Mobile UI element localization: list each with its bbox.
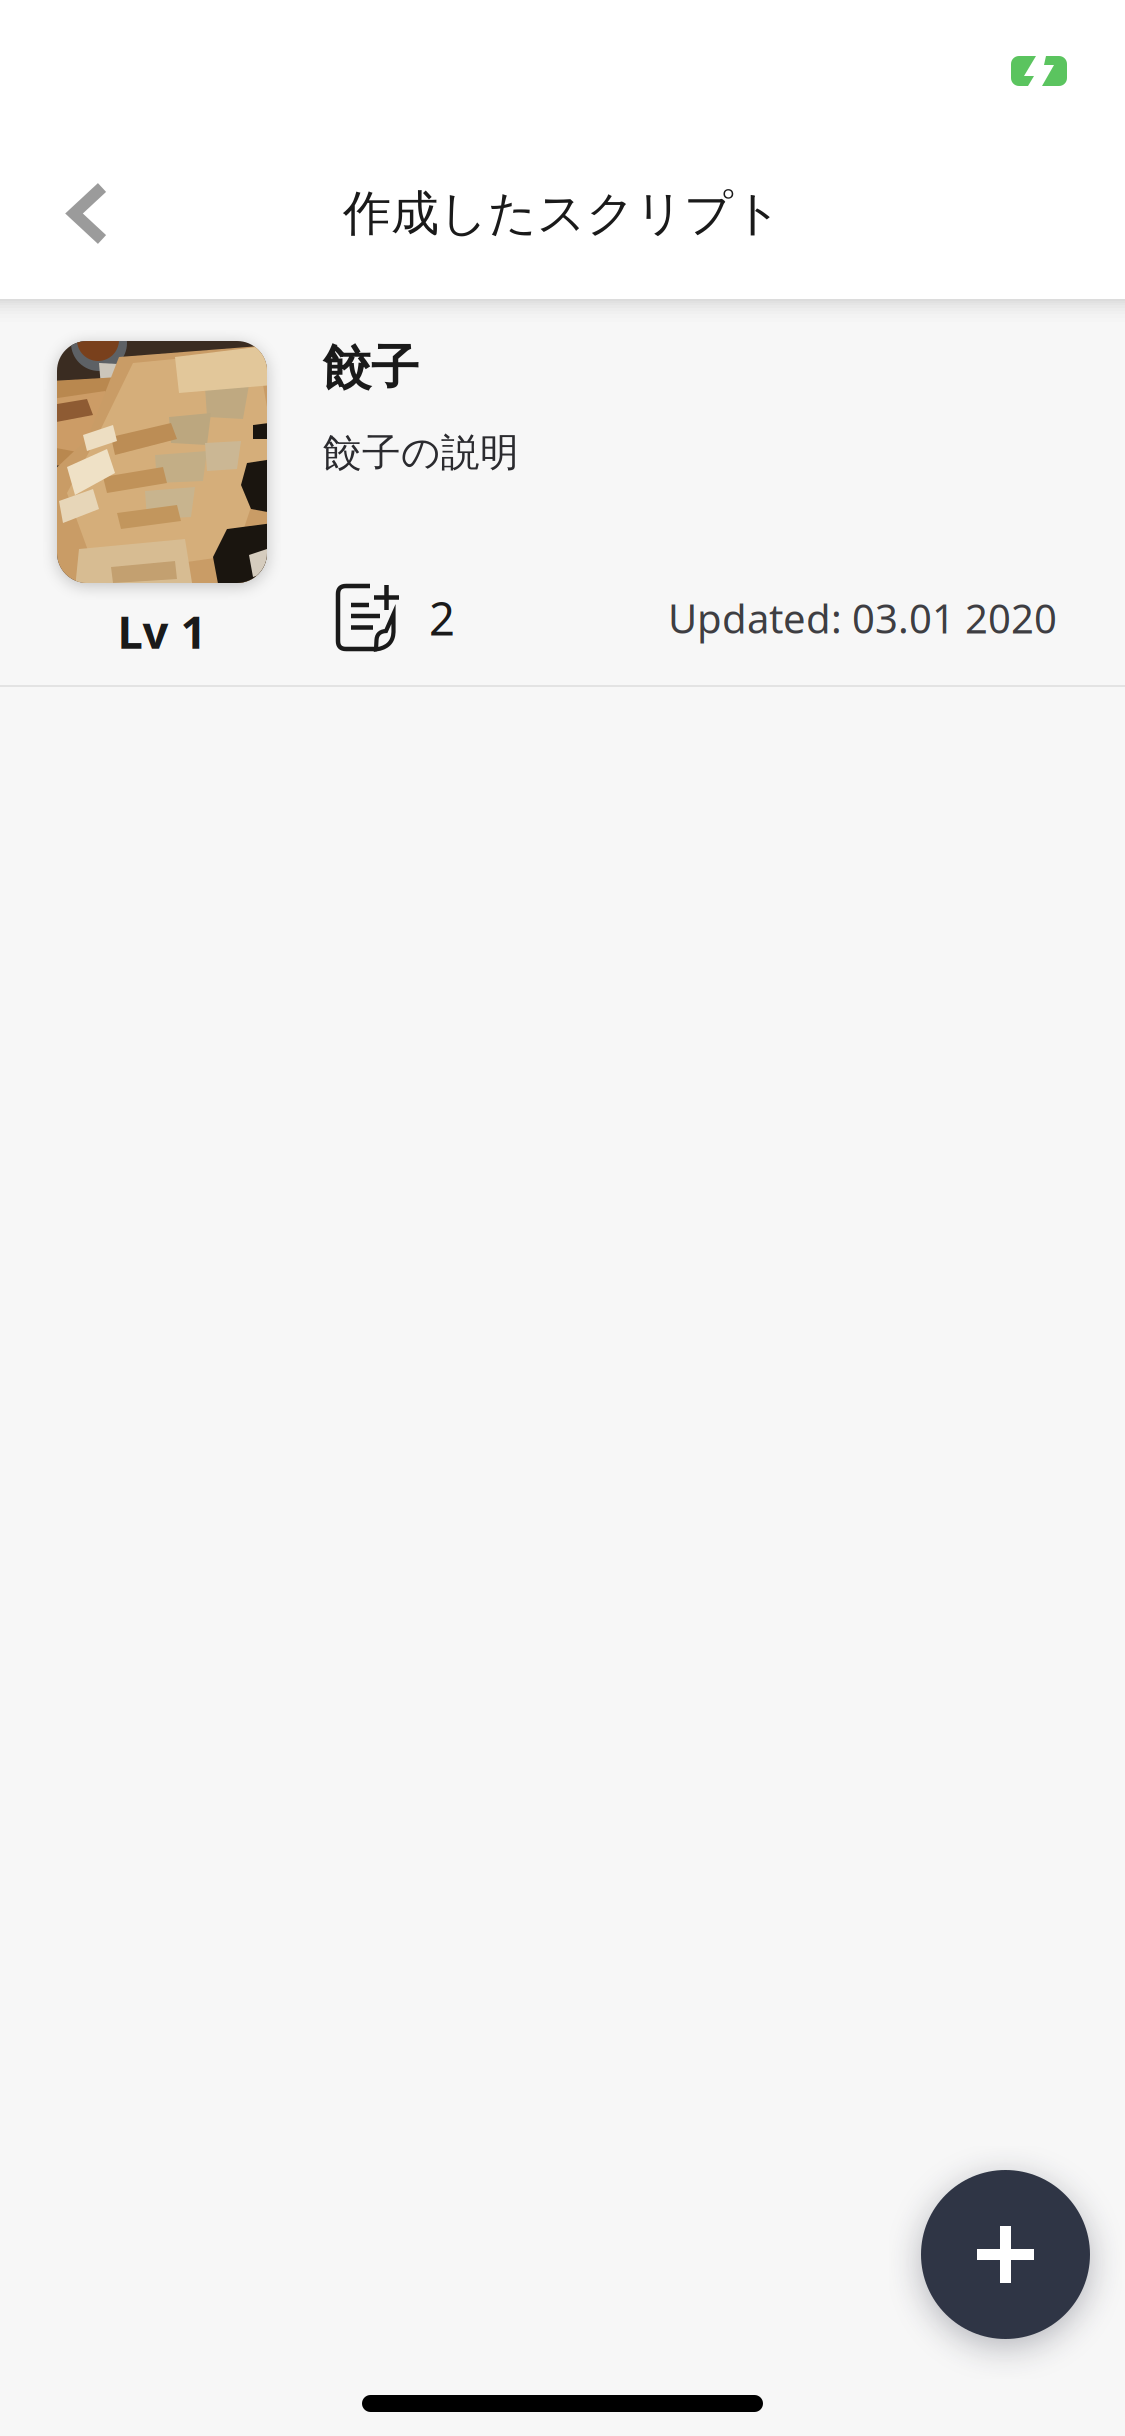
staticText: 作成したスクリプト: [343, 184, 782, 243]
staticText: 餃子: [323, 338, 419, 397]
button[interactable]: Add script: [921, 2170, 1090, 2339]
staticText: Updated: 03.01 2020: [668, 591, 1057, 644]
staticText: Lv 1: [117, 601, 206, 661]
staticText: 2: [429, 588, 455, 648]
button[interactable]: Lv 1: [0, 299, 1125, 687]
button[interactable]: Back: [18, 138, 158, 288]
staticText: 餃子の説明: [323, 429, 519, 476]
